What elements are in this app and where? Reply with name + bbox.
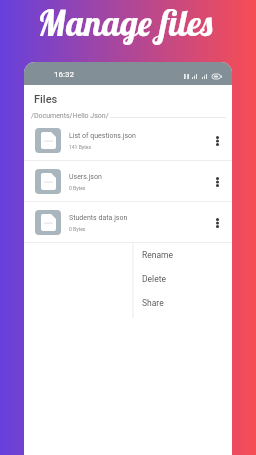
button[interactable]: Delete: [134, 267, 231, 291]
staticText: Manage files: [38, 1, 215, 45]
staticText: 0 Bytes: [69, 185, 86, 191]
staticText: Rename: [142, 250, 174, 260]
staticText: Users.json: [69, 173, 102, 181]
button[interactable]: Share: [134, 291, 231, 315]
button[interactable]: More options: [208, 132, 226, 150]
staticText: Share: [142, 298, 164, 308]
staticText: 16:32: [54, 70, 74, 79]
button[interactable]: Students data.json: [24, 202, 232, 243]
staticText: 0 Bytes: [69, 226, 86, 232]
button[interactable]: List of questions.json: [24, 120, 232, 161]
button[interactable]: More options: [208, 214, 226, 232]
button[interactable]: More options: [208, 173, 226, 191]
button[interactable]: Users.json: [24, 161, 232, 202]
staticText: /Documents/Hello Json/: [31, 112, 109, 120]
staticText: List of questions.json: [69, 132, 136, 140]
button[interactable]: Rename: [134, 243, 231, 267]
staticText: Files: [34, 93, 58, 106]
staticText: Students data.json: [69, 214, 128, 222]
staticText: 141 Bytes: [69, 144, 92, 150]
staticText: Delete: [142, 274, 166, 284]
